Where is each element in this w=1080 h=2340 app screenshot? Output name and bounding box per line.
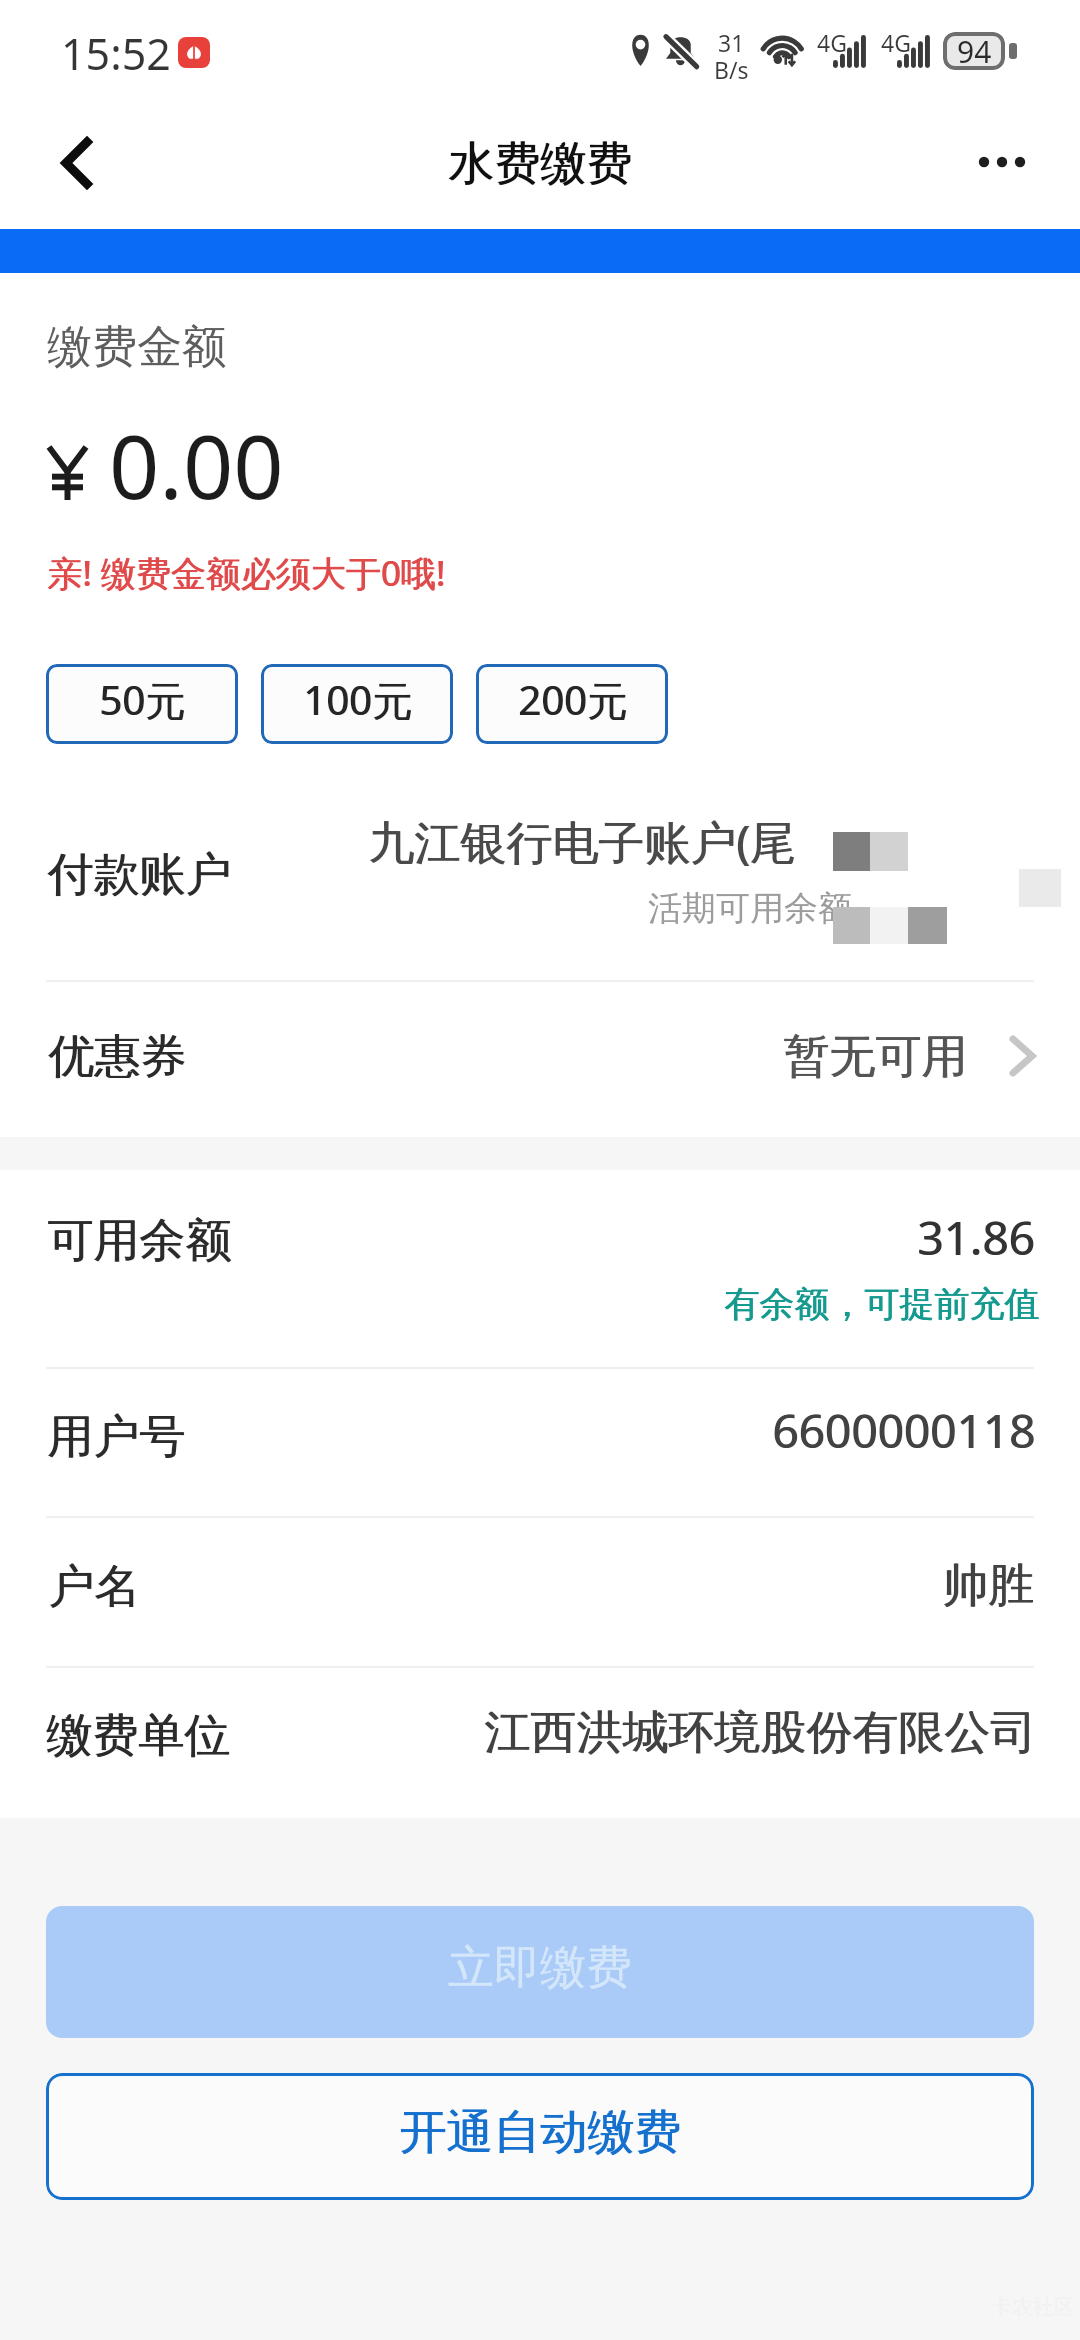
staticText: 4G <box>817 27 847 58</box>
staticText: 户名 <box>48 1558 140 1616</box>
staticText: 有余额，可提前充值 <box>725 1282 1040 1326</box>
staticText: 100元 <box>304 672 413 727</box>
button[interactable]: 200元 <box>476 664 668 744</box>
staticText: 水费缴费 <box>449 135 633 193</box>
staticText: 江西洪城环境股份有限公司 <box>485 1704 1037 1762</box>
staticText: 开通自动缴费 <box>399 2103 681 2162</box>
staticText: 优惠券 <box>48 1028 186 1086</box>
staticText: B/s <box>714 54 749 85</box>
staticText: 94 <box>957 32 992 69</box>
staticText: 缴费单位 <box>46 1707 230 1765</box>
staticText: 6600000118 <box>773 1399 1037 1462</box>
staticText: 水费缴费 <box>448 135 632 193</box>
staticText: 100元 <box>303 672 412 727</box>
staticText: 帅胜 <box>942 1557 1034 1615</box>
staticText: 付款账户 <box>47 846 231 904</box>
staticText: 0.00 <box>109 405 284 525</box>
staticText: 开通自动缴费 <box>400 2103 682 2162</box>
staticText: 200元 <box>519 672 628 727</box>
button[interactable]: 立即缴费 <box>46 1906 1034 2038</box>
staticText: 用户号 <box>48 1408 186 1466</box>
staticText: 4G <box>881 27 911 58</box>
staticText: 优惠券 <box>49 1028 187 1086</box>
staticText: 缴费单位 <box>47 1707 231 1765</box>
staticText: 31 <box>718 27 745 58</box>
staticText: 亲! 缴费金额必须大于0哦! <box>47 549 445 597</box>
staticText: 200元 <box>518 672 627 727</box>
staticText: 付款账户 <box>48 846 232 904</box>
staticText: 亲! 缴费金额必须大于0哦! <box>48 549 446 597</box>
staticText: 有余额，可提前充值 <box>724 1282 1039 1326</box>
staticText: 用户号 <box>47 1408 185 1466</box>
staticText: 江西洪城环境股份有限公司 <box>484 1704 1036 1762</box>
button[interactable]: 优惠券 <box>0 980 1080 1137</box>
staticText: 暂无可用 <box>784 1028 968 1086</box>
staticText: 户名 <box>49 1558 141 1616</box>
button[interactable]: Back <box>0 110 145 229</box>
staticText: 31.86 <box>917 1206 1035 1269</box>
staticText: 暂无可用 <box>783 1028 967 1086</box>
button[interactable]: 50元 <box>46 664 238 744</box>
staticText: 活期可用余额 <box>648 887 852 930</box>
staticText: 缴费金额 <box>47 319 227 376</box>
staticText: 50元 <box>100 672 186 727</box>
button[interactable]: More options <box>935 110 1080 229</box>
staticText: 可用余额 <box>48 1212 232 1270</box>
staticText: 50元 <box>99 672 185 727</box>
staticText: 九江银行电子账户(尾 <box>368 810 796 873</box>
staticText: 15:52 <box>61 24 171 83</box>
button[interactable]: 100元 <box>261 664 453 744</box>
staticText: 6600000118 <box>772 1399 1036 1462</box>
button[interactable]: 开通自动缴费 <box>46 2073 1034 2200</box>
staticText: 可用余额 <box>47 1212 231 1270</box>
staticText: 31.86 <box>918 1206 1036 1269</box>
staticText: 帅胜 <box>943 1557 1035 1615</box>
staticText: 九江银行电子账户(尾 <box>369 810 797 873</box>
button[interactable]: 付款账户 <box>0 780 1080 980</box>
staticText: 立即缴费 <box>448 1939 632 1997</box>
